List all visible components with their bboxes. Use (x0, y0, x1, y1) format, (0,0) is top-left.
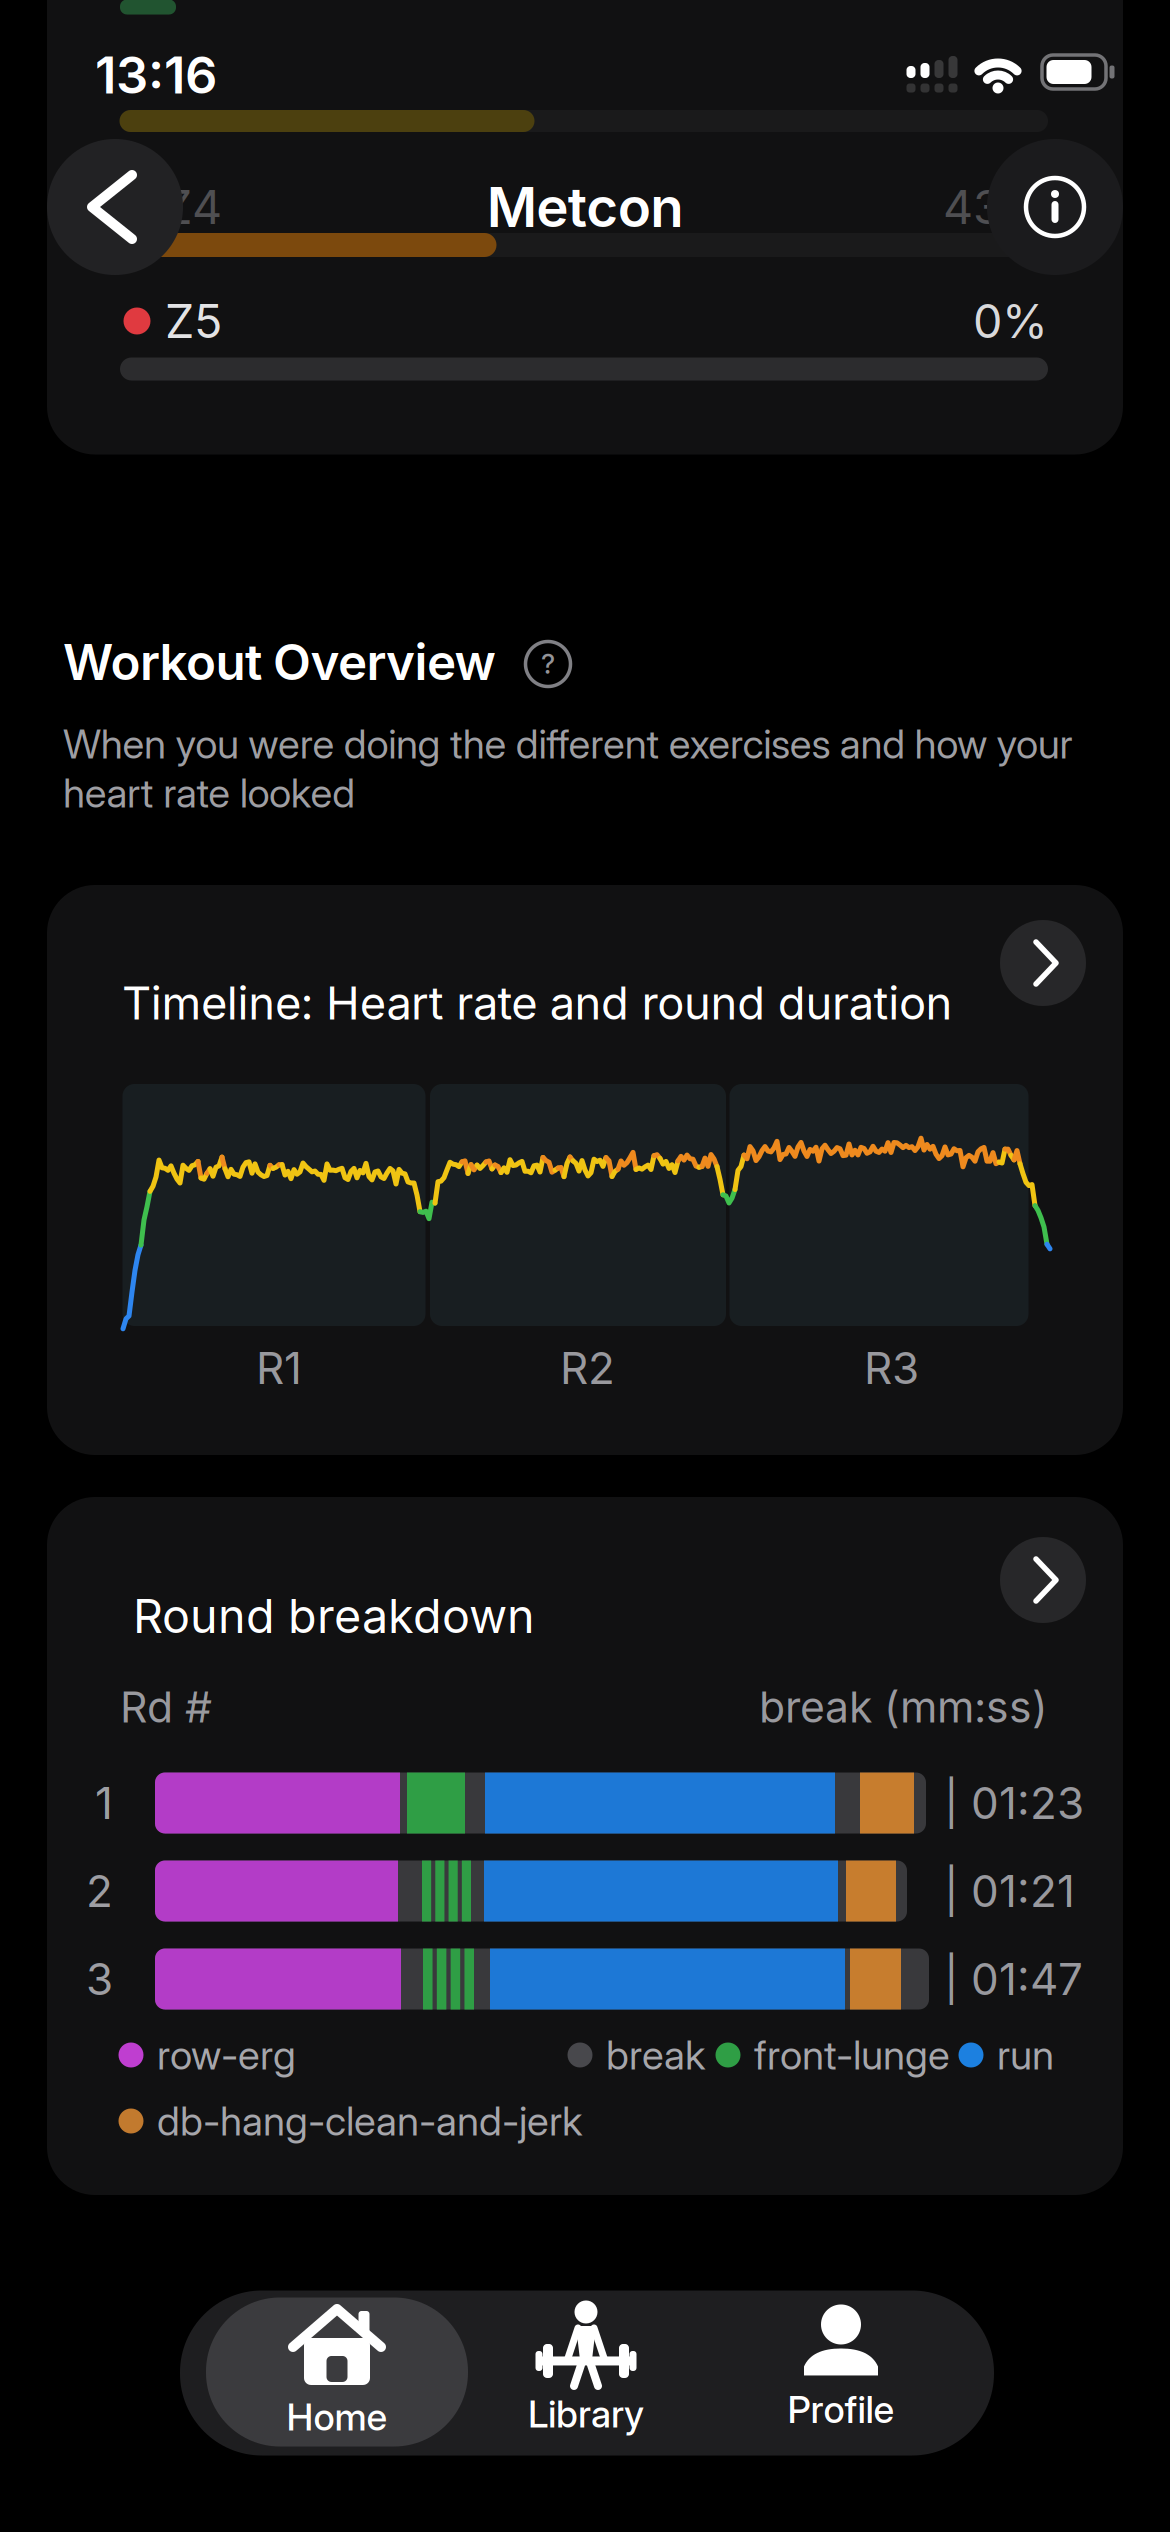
staticText: | 01:47 (944, 1953, 1083, 2005)
staticText: Metcon (487, 175, 683, 239)
staticText: R1 (256, 1342, 302, 1394)
staticText: 0% (973, 293, 1048, 349)
button[interactable]: Profile (716, 2294, 966, 2449)
button[interactable]: Home (206, 2297, 468, 2446)
button[interactable]: Round breakdown details (1000, 1537, 1086, 1623)
staticText: When you were doing the different exerci… (63, 720, 1072, 768)
button[interactable]: Library (461, 2294, 711, 2449)
staticText: break (mm:ss) (759, 1682, 1048, 1732)
staticText: R2 (560, 1342, 615, 1394)
staticText: 1 (95, 1777, 113, 1829)
staticText: Rd # (120, 1682, 212, 1732)
staticText: heart rate looked (63, 769, 355, 817)
staticText: | 01:23 (944, 1777, 1084, 1829)
staticText: Workout Overview (63, 633, 495, 691)
staticText: Profile (787, 2387, 894, 2431)
staticText: R3 (864, 1342, 919, 1394)
staticText: 13:16 (95, 45, 217, 105)
staticText: 3 (86, 1953, 113, 2005)
staticText: row-erg (157, 2031, 296, 2079)
staticText: front-lunge (754, 2031, 950, 2079)
staticText: Z4 (163, 179, 222, 235)
staticText: ? (541, 648, 555, 680)
staticText: run (997, 2031, 1054, 2079)
staticText: 43% (943, 179, 1048, 235)
staticText: Z5 (165, 293, 222, 349)
button[interactable]: Timeline details (1000, 920, 1086, 1006)
staticText: | 01:21 (944, 1865, 1075, 1917)
staticText: Round breakdown (133, 1588, 535, 1644)
staticText: break (606, 2031, 705, 2079)
button[interactable]: Info (987, 139, 1123, 275)
staticText: 2 (86, 1865, 113, 1917)
staticText: Timeline: Heart rate and round duration (122, 976, 953, 1030)
button[interactable]: About workout overview (525, 641, 570, 686)
button[interactable]: Back (47, 139, 183, 275)
staticText: Home (286, 2395, 387, 2439)
staticText: Library (528, 2392, 644, 2436)
staticText: db-hang-clean-and-jerk (157, 2097, 582, 2145)
